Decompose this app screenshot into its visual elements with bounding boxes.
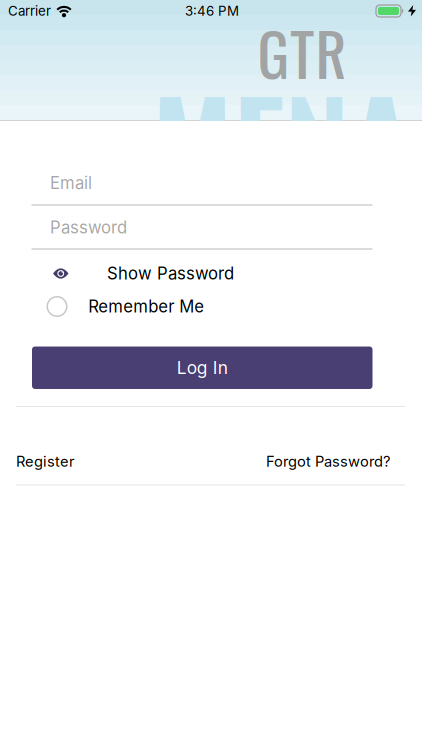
staticText: Log In [177, 357, 228, 378]
staticText: 3:46 PM [185, 3, 239, 19]
button[interactable]: Show Password [53, 261, 343, 285]
staticText: Show Password [107, 263, 234, 284]
button[interactable]: Remember Me [47, 294, 337, 318]
button[interactable]: Password [32, 212, 372, 242]
staticText: Remember Me [88, 296, 204, 317]
staticText: Email [50, 173, 92, 193]
staticText: Carrier [8, 3, 51, 19]
staticText: MENA [151, 52, 412, 226]
button[interactable]: Register [16, 449, 196, 473]
staticText: Register [16, 453, 75, 470]
staticText: Forgot Password? [266, 453, 390, 470]
staticText: GTR [257, 9, 346, 96]
button[interactable]: Email [32, 168, 372, 198]
button[interactable]: Log In [32, 346, 372, 389]
staticText: Password [50, 217, 127, 238]
button[interactable]: Forgot Password? [210, 449, 390, 473]
